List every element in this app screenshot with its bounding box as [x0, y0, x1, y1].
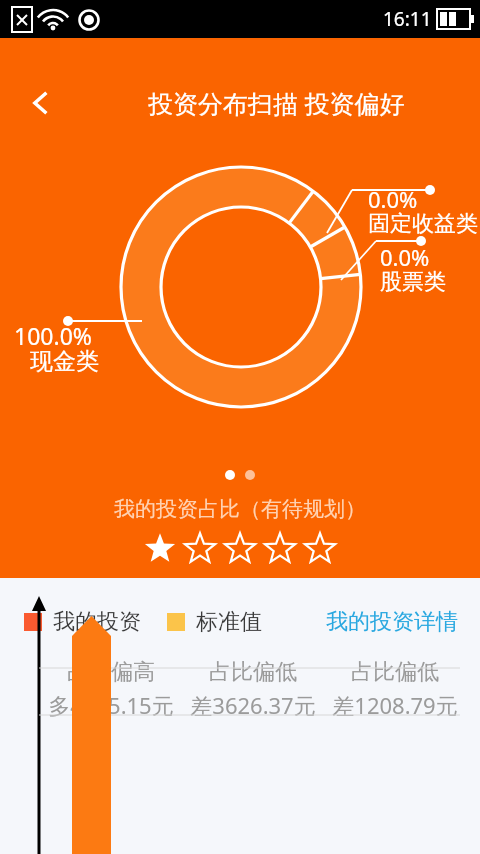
- staticText: 16:11: [383, 6, 432, 32]
- button[interactable]: Rating star 1: [140, 530, 180, 566]
- staticText: 标准值: [196, 608, 262, 636]
- button[interactable]: Rating star 5: [300, 530, 340, 566]
- staticText: 固定收益类: [368, 210, 478, 238]
- staticText: 我的投资详情: [326, 608, 458, 636]
- button[interactable]: Rating star 2: [180, 530, 220, 566]
- staticText: 投资分布扫描 投资偏好: [148, 86, 405, 120]
- staticText: 100.0%: [14, 320, 92, 351]
- staticText: 占比偏高: [67, 658, 155, 686]
- staticText: 现金类: [30, 347, 99, 376]
- staticText: 我的投资占比（有待规划）: [114, 496, 366, 522]
- button[interactable]: Rating star 3: [220, 530, 260, 566]
- staticText: 我的投资: [53, 608, 141, 636]
- staticText: 差3626.37元: [190, 690, 316, 720]
- staticText: 多4835.15元: [48, 690, 174, 720]
- button[interactable]: 我的投资详情: [326, 608, 458, 636]
- staticText: 差1208.79元: [332, 690, 458, 720]
- button[interactable]: 我的投资: [24, 608, 141, 636]
- staticText: 0.0%: [368, 184, 418, 214]
- staticText: 占比偏低: [209, 658, 297, 686]
- button[interactable]: 标准值: [167, 608, 262, 636]
- button[interactable]: Back: [26, 86, 60, 120]
- staticText: 0.0%: [380, 242, 430, 272]
- button[interactable]: Rating star 4: [260, 530, 300, 566]
- staticText: 股票类: [380, 268, 446, 296]
- staticText: 占比偏低: [351, 658, 439, 686]
